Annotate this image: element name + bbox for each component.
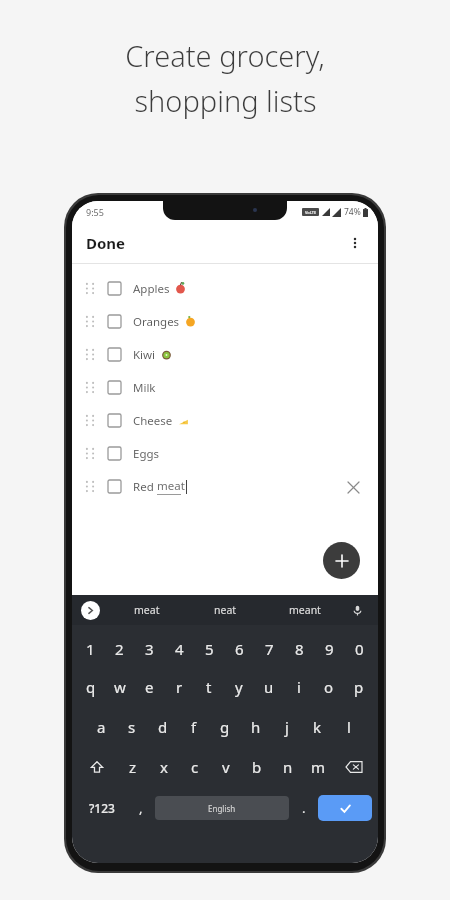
staticText: neat	[214, 603, 237, 617]
button[interactable]: meant	[265, 595, 344, 625]
staticText: meat	[134, 603, 160, 617]
staticText: h	[251, 717, 261, 737]
staticText: c	[191, 757, 199, 777]
staticText: y	[235, 677, 243, 697]
staticText: Red	[133, 479, 157, 495]
button[interactable]: o	[314, 667, 344, 707]
button[interactable]: 9	[314, 631, 344, 667]
staticText: Kiwi	[133, 347, 156, 363]
button[interactable]: r	[164, 667, 194, 707]
button[interactable]: Toggle item	[108, 315, 121, 328]
button[interactable]: j	[271, 707, 302, 747]
button[interactable]: Toggle item	[108, 447, 121, 460]
button[interactable]: Toggle item	[108, 381, 121, 394]
button[interactable]: Toggle item	[72, 371, 378, 404]
staticText: s	[128, 717, 136, 737]
button[interactable]: 5	[194, 631, 224, 667]
button[interactable]: n	[272, 747, 303, 787]
button[interactable]: meat	[108, 595, 186, 625]
staticText: q	[86, 677, 96, 697]
button[interactable]: 3	[134, 631, 164, 667]
button[interactable]: p	[344, 667, 374, 707]
button[interactable]: Toggle item	[72, 470, 378, 503]
button[interactable]: b	[241, 747, 272, 787]
staticText: Apples	[133, 281, 170, 297]
button[interactable]: e	[134, 667, 164, 707]
button[interactable]: Toggle item	[72, 272, 378, 305]
button[interactable]: ?123	[78, 787, 126, 829]
button[interactable]: More options	[340, 228, 370, 258]
staticText: .	[302, 799, 306, 817]
staticText: a	[97, 717, 106, 737]
button[interactable]: English	[155, 796, 289, 820]
staticText: ,	[139, 799, 143, 817]
staticText: 0	[355, 639, 364, 659]
button[interactable]: 7	[254, 631, 284, 667]
staticText: w	[114, 677, 126, 697]
button[interactable]: d	[147, 707, 178, 747]
button[interactable]: i	[284, 667, 314, 707]
button[interactable]: 2	[105, 631, 134, 667]
button[interactable]: w	[105, 667, 134, 707]
staticText: shopping lists	[134, 81, 317, 120]
staticText: b	[252, 757, 262, 777]
staticText: 3	[145, 639, 154, 659]
button[interactable]: v	[210, 747, 241, 787]
button[interactable]: Backspace	[334, 747, 374, 787]
button[interactable]: z	[117, 747, 148, 787]
staticText: o	[324, 677, 334, 697]
button[interactable]: Toggle item	[108, 282, 121, 295]
button[interactable]: Toggle item	[72, 305, 378, 338]
button[interactable]: 6	[224, 631, 254, 667]
staticText: 2	[115, 639, 124, 659]
button[interactable]: g	[209, 707, 240, 747]
button[interactable]: ,	[126, 787, 155, 829]
button[interactable]: Toggle item	[108, 480, 121, 493]
button[interactable]: h	[240, 707, 271, 747]
button[interactable]: neat	[186, 595, 265, 625]
button[interactable]: m	[303, 747, 334, 787]
staticText: r	[176, 677, 183, 697]
staticText: p	[354, 677, 364, 697]
staticText: z	[129, 757, 137, 777]
button[interactable]: Toggle item	[72, 437, 378, 470]
button[interactable]: 0	[344, 631, 374, 667]
button[interactable]: l	[333, 707, 364, 747]
button[interactable]: y	[224, 667, 254, 707]
staticText: u	[264, 677, 274, 697]
button[interactable]: Expand toolbar	[81, 601, 100, 620]
button[interactable]: Enter	[318, 795, 372, 821]
button[interactable]: Voice input	[346, 599, 368, 621]
button[interactable]: Toggle item	[72, 404, 378, 437]
staticText: 9	[325, 639, 334, 659]
button[interactable]: Toggle item	[108, 348, 121, 361]
staticText: n	[283, 757, 293, 777]
staticText: ?123	[89, 800, 115, 816]
button[interactable]: u	[254, 667, 284, 707]
staticText: v	[222, 757, 230, 777]
button[interactable]: Clear text	[342, 476, 364, 498]
staticText: g	[220, 717, 230, 737]
button[interactable]: 8	[284, 631, 314, 667]
button[interactable]: Add item	[323, 542, 360, 579]
button[interactable]: 4	[164, 631, 194, 667]
button[interactable]: 1	[76, 631, 105, 667]
staticText: Milk	[133, 380, 156, 396]
button[interactable]: t	[194, 667, 224, 707]
button[interactable]: f	[178, 707, 209, 747]
staticText: 7	[265, 639, 274, 659]
button[interactable]: k	[302, 707, 333, 747]
button[interactable]: s	[116, 707, 147, 747]
button[interactable]: c	[179, 747, 210, 787]
staticText: 74%	[344, 206, 361, 218]
staticText: x	[160, 757, 168, 777]
button[interactable]: x	[148, 747, 179, 787]
button[interactable]: q	[76, 667, 105, 707]
button[interactable]: a	[86, 707, 116, 747]
staticText: 9:55	[86, 206, 104, 218]
button[interactable]: .	[289, 787, 318, 829]
button[interactable]: Shift	[76, 747, 117, 787]
button[interactable]: Toggle item	[108, 414, 121, 427]
button[interactable]: Toggle item	[72, 338, 378, 371]
staticText: meant	[289, 603, 321, 617]
